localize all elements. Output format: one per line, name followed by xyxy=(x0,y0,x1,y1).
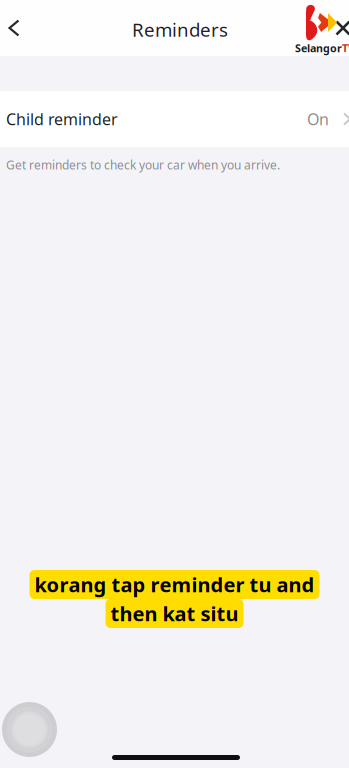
staticText: Get reminders to check your car when you… xyxy=(6,157,280,173)
staticText: On xyxy=(307,108,329,130)
staticText: Reminders xyxy=(132,17,228,42)
staticText: Selangor xyxy=(295,41,342,55)
button[interactable]: Close xyxy=(330,15,349,41)
staticText: TV xyxy=(342,41,349,55)
staticText: Child reminder xyxy=(6,108,118,130)
button[interactable]: Back xyxy=(0,6,33,50)
staticText: korang tap reminder tu and xyxy=(34,571,314,598)
button[interactable]: Child reminder xyxy=(0,91,349,147)
staticText: then kat situ xyxy=(110,600,238,627)
